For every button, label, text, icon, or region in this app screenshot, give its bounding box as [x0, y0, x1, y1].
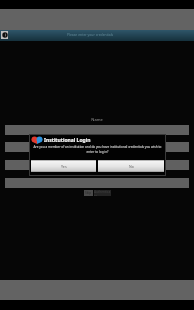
staticText: Institutional Login: [44, 137, 91, 144]
button[interactable]: Authenticate: [94, 190, 111, 196]
staticText: Authenticate: [94, 190, 111, 196]
button[interactable]: [5, 160, 189, 170]
staticText: Yes: [61, 164, 67, 169]
button[interactable]: Skip: [84, 190, 93, 196]
staticText: Skip: [85, 191, 92, 195]
button[interactable]: [5, 142, 189, 152]
staticText: User name: [0, 135, 194, 140]
staticText: Please enter your credentials: [67, 32, 114, 37]
button[interactable]: [5, 125, 189, 135]
staticText: Name: [0, 117, 194, 122]
button[interactable]: App logo: [1, 31, 8, 39]
staticText: Password: [0, 152, 194, 157]
button[interactable]: No: [98, 160, 164, 172]
staticText: Are you a member of an institution and d…: [30, 145, 165, 154]
staticText: No: [129, 164, 134, 169]
button[interactable]: Yes: [31, 160, 96, 172]
staticText: Confirm password: [0, 170, 194, 175]
